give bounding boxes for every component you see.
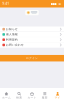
button[interactable]: カート [26,89,38,99]
staticText: ホーム [2,96,11,99]
staticText: ●●● ▬ [51,2,62,5]
button[interactable]: ログイン [0,55,64,61]
button[interactable]: 個人情報 [0,32,64,37]
staticText: 利用規約 [6,38,18,41]
staticText: 9:41 [2,2,9,5]
button[interactable]: お知らせ [0,27,64,32]
staticText: お問い合わせ [6,43,24,47]
staticText: お知らせ [6,28,18,31]
button[interactable]: ホーム [0,89,13,99]
staticText: 個人情報 [6,33,18,36]
button[interactable]: マイ [51,89,64,99]
staticText: ログイン [26,57,38,60]
button[interactable]: お問い合わせ [0,42,64,47]
button[interactable]: 利用規約 [0,37,64,42]
staticText: 履歴 [42,96,48,99]
button[interactable]: 検索 [13,89,26,99]
staticText: 検索 [16,96,22,99]
staticText: マイ [55,96,61,99]
staticText: カート [27,96,36,99]
button[interactable]: 履歴 [38,89,51,99]
